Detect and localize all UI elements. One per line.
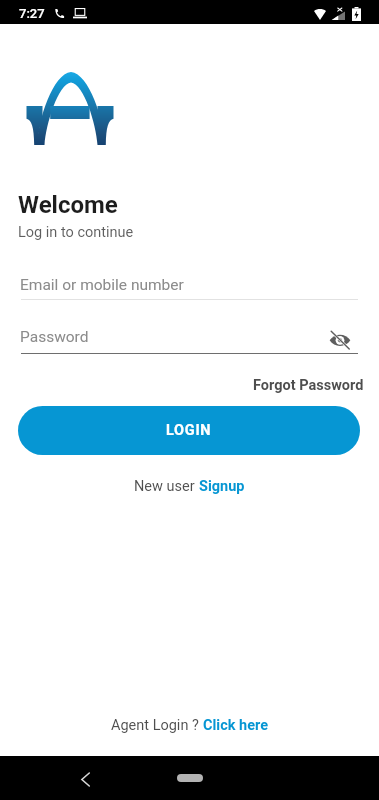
staticText: Forgot Password [253, 377, 364, 394]
staticText: LOGIN [166, 422, 212, 439]
staticText: Log in to continue [18, 224, 134, 241]
staticText: Click here [203, 717, 269, 734]
button[interactable]: Agent Login ? [107, 713, 273, 738]
button[interactable]: New user [130, 474, 249, 499]
button[interactable]: Home [177, 774, 203, 782]
staticText: Agent Login ? [111, 717, 203, 734]
staticText: New user [134, 478, 199, 495]
staticText: Password [20, 328, 89, 346]
button[interactable]: Back [66, 759, 104, 797]
staticText: 7:27 [19, 6, 45, 21]
button[interactable]: LOGIN [18, 406, 360, 455]
button[interactable]: Show password [326, 326, 354, 354]
staticText: Email or mobile number [20, 276, 184, 294]
staticText: Signup [199, 478, 245, 495]
button[interactable]: Forgot Password [248, 372, 369, 399]
staticText: Welcome [18, 191, 118, 219]
